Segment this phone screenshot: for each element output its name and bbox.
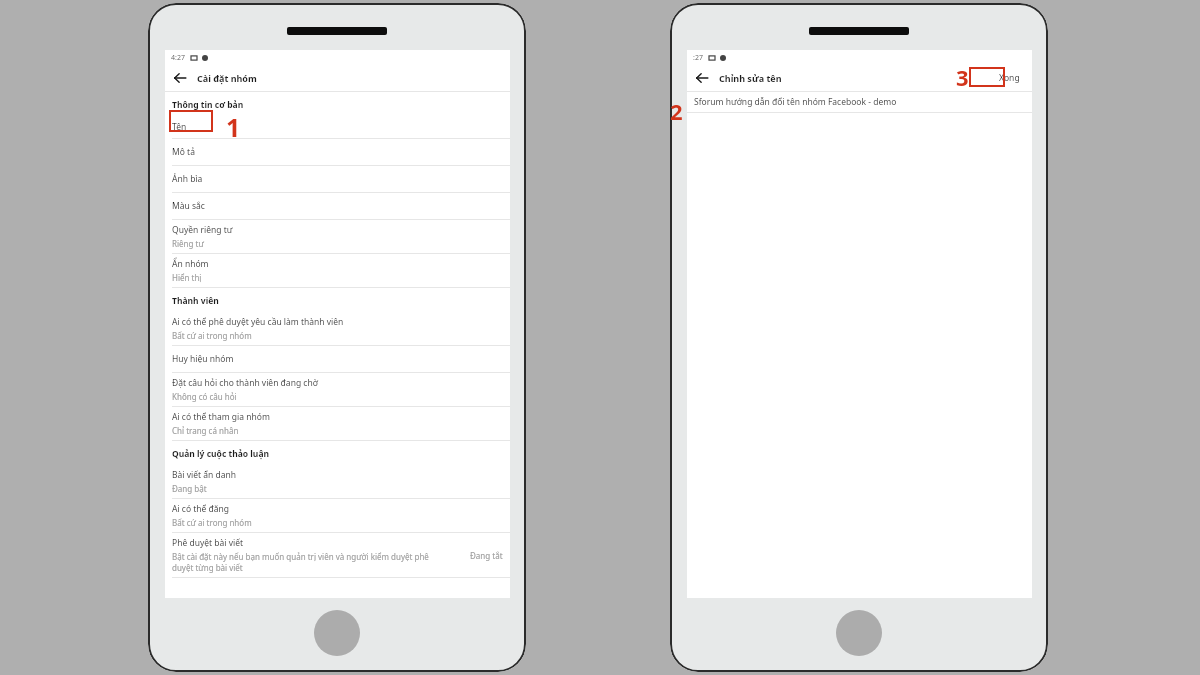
staticText: Phê duyệt bài viết xyxy=(172,537,244,549)
button[interactable]: Ẩn nhóm xyxy=(165,254,510,288)
staticText: Cài đặt nhóm xyxy=(197,72,257,84)
staticText: Chỉ trang cá nhân xyxy=(172,425,239,436)
staticText: 3 xyxy=(956,62,969,92)
staticText: 4:27 xyxy=(171,53,185,63)
staticText: Bất cứ ai trong nhóm xyxy=(172,517,252,528)
staticText: Ẩn nhóm xyxy=(172,258,209,270)
staticText: Chỉnh sửa tên xyxy=(719,72,782,84)
staticText: Huy hiệu nhóm xyxy=(172,353,234,365)
staticText: Đặt câu hỏi cho thành viên đang chờ xyxy=(172,377,318,389)
staticText: Bất cứ ai trong nhóm xyxy=(172,330,252,341)
staticText: duyệt từng bài viết xyxy=(172,562,243,573)
button[interactable]: Back xyxy=(695,71,709,85)
button[interactable]: Xong xyxy=(993,69,1026,87)
staticText: Sforum hướng dẫn đổi tên nhóm Facebook -… xyxy=(694,96,897,108)
staticText: Thành viên xyxy=(172,295,219,307)
staticText: Bật cài đặt này nếu bạn muốn quản trị vi… xyxy=(172,551,429,562)
button[interactable]: Phê duyệt bài viết xyxy=(165,533,510,578)
staticText: 1 xyxy=(226,110,241,144)
button[interactable]: Home xyxy=(836,610,882,656)
staticText: 2 xyxy=(670,96,683,126)
button[interactable]: Home xyxy=(314,610,360,656)
staticText: Không có câu hỏi xyxy=(172,391,237,402)
staticText: Quản lý cuộc thảo luận xyxy=(172,448,269,460)
staticText: Đang tắt xyxy=(470,550,503,561)
button[interactable]: Back xyxy=(173,71,187,85)
button[interactable]: Ai có thể đăng xyxy=(165,499,510,533)
staticText: Xong xyxy=(999,72,1020,84)
staticText: Quyền riêng tư xyxy=(172,224,233,236)
staticText: Ai có thể đăng xyxy=(172,503,230,515)
button[interactable]: Quyền riêng tư xyxy=(165,220,510,254)
staticText: Bài viết ẩn danh xyxy=(172,469,237,481)
staticText: Đang bật xyxy=(172,483,207,494)
staticText: Ai có thể tham gia nhóm xyxy=(172,411,270,423)
button[interactable]: Ai có thể tham gia nhóm xyxy=(165,407,510,441)
button[interactable]: Ảnh bìa xyxy=(165,166,510,193)
staticText: Mô tả xyxy=(172,146,195,158)
staticText: Ai có thể phê duyệt yêu cầu làm thành vi… xyxy=(172,316,344,328)
staticText: Tên xyxy=(172,121,187,133)
button[interactable]: Ai có thể phê duyệt yêu cầu làm thành vi… xyxy=(165,312,510,346)
button[interactable]: Đặt câu hỏi cho thành viên đang chờ xyxy=(165,373,510,407)
staticText: Thông tin cơ bản xyxy=(172,99,244,111)
staticText: Riêng tư xyxy=(172,238,204,249)
button[interactable]: Màu sắc xyxy=(165,193,510,220)
staticText: Ảnh bìa xyxy=(172,173,203,185)
button[interactable]: Huy hiệu nhóm xyxy=(165,346,510,373)
staticText: Màu sắc xyxy=(172,200,205,212)
button[interactable]: Bài viết ẩn danh xyxy=(165,465,510,499)
button[interactable]: Mô tả xyxy=(165,139,510,166)
staticText: :27 xyxy=(693,53,703,63)
staticText: Hiển thị xyxy=(172,272,202,283)
